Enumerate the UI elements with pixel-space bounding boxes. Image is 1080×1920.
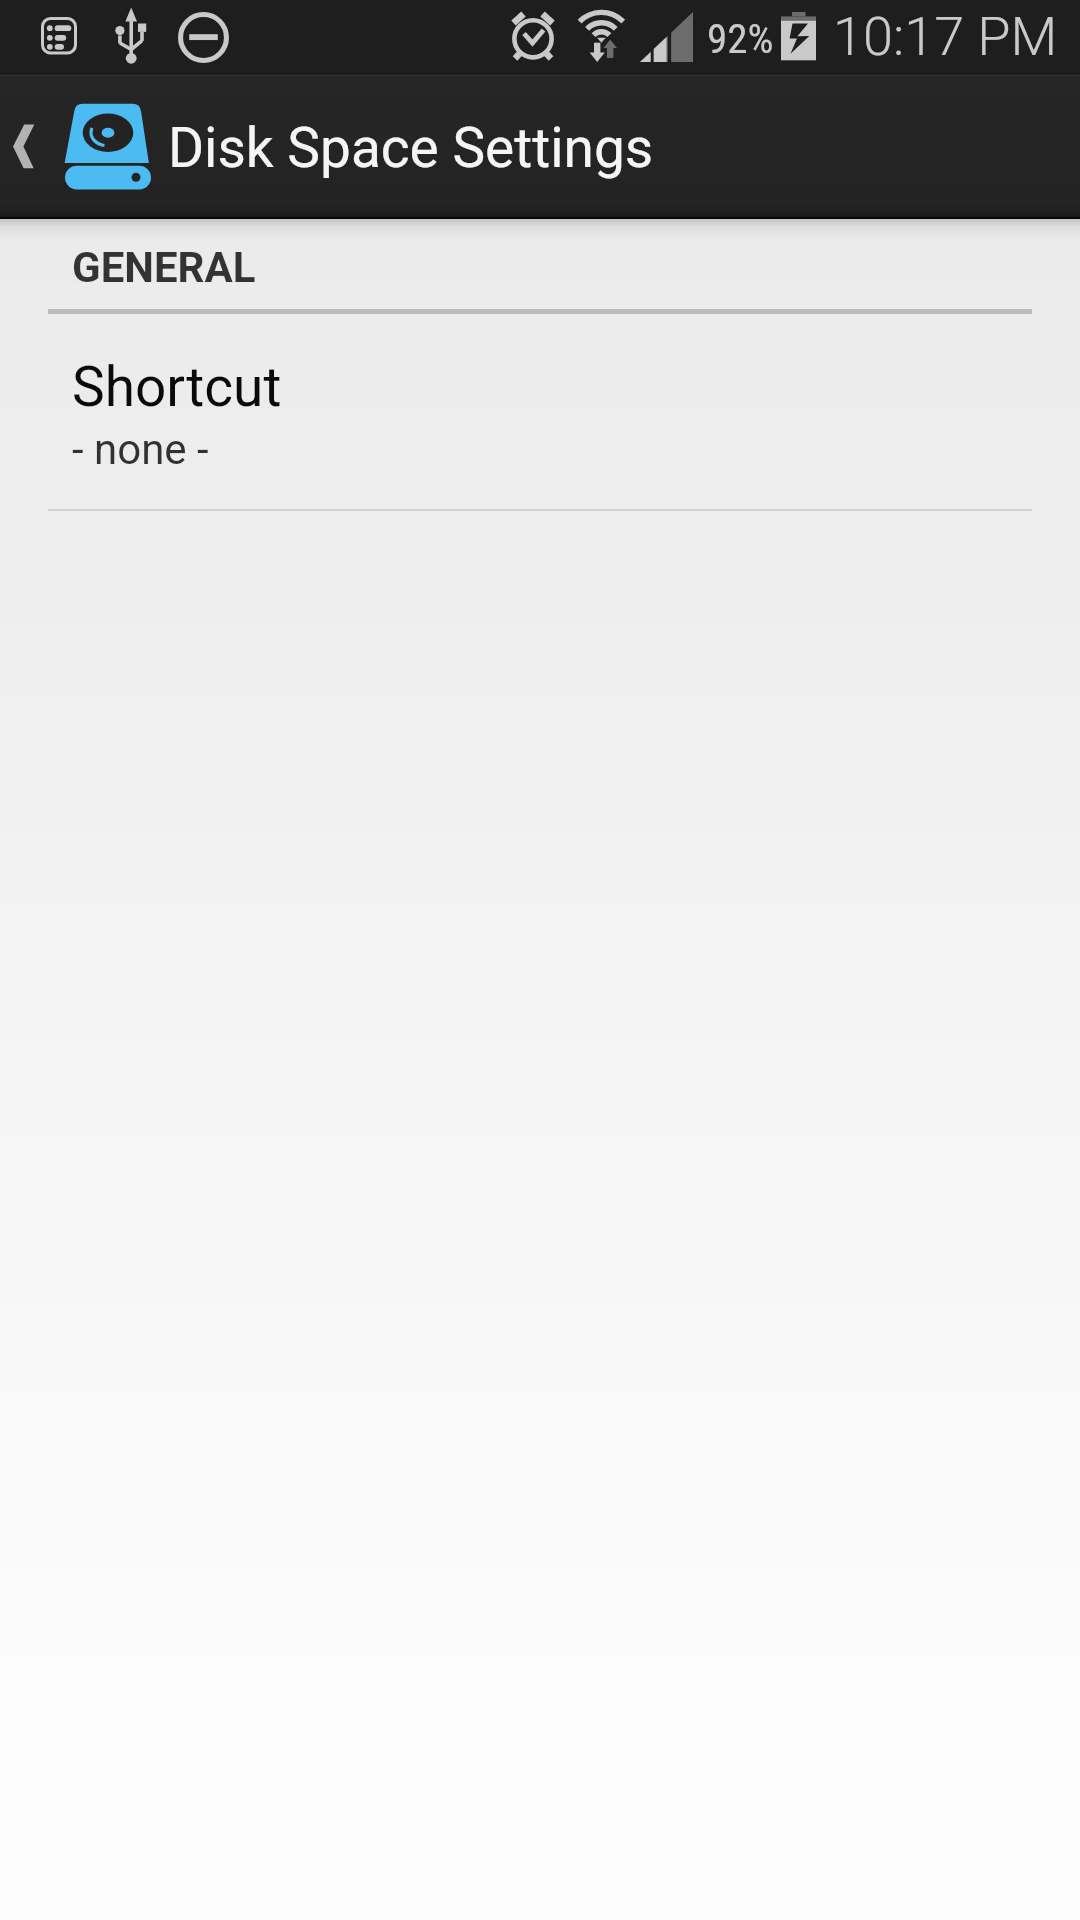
staticText: GENERAL xyxy=(72,243,256,292)
staticText: 92% xyxy=(707,15,774,63)
staticText: Shortcut xyxy=(72,355,282,419)
button[interactable]: Shortcut xyxy=(0,318,1080,511)
staticText: - none - xyxy=(72,425,209,474)
staticText: 10:17 PM xyxy=(833,5,1058,68)
staticText: Disk Space Settings xyxy=(168,116,654,180)
button[interactable]: Navigate up xyxy=(0,76,700,219)
